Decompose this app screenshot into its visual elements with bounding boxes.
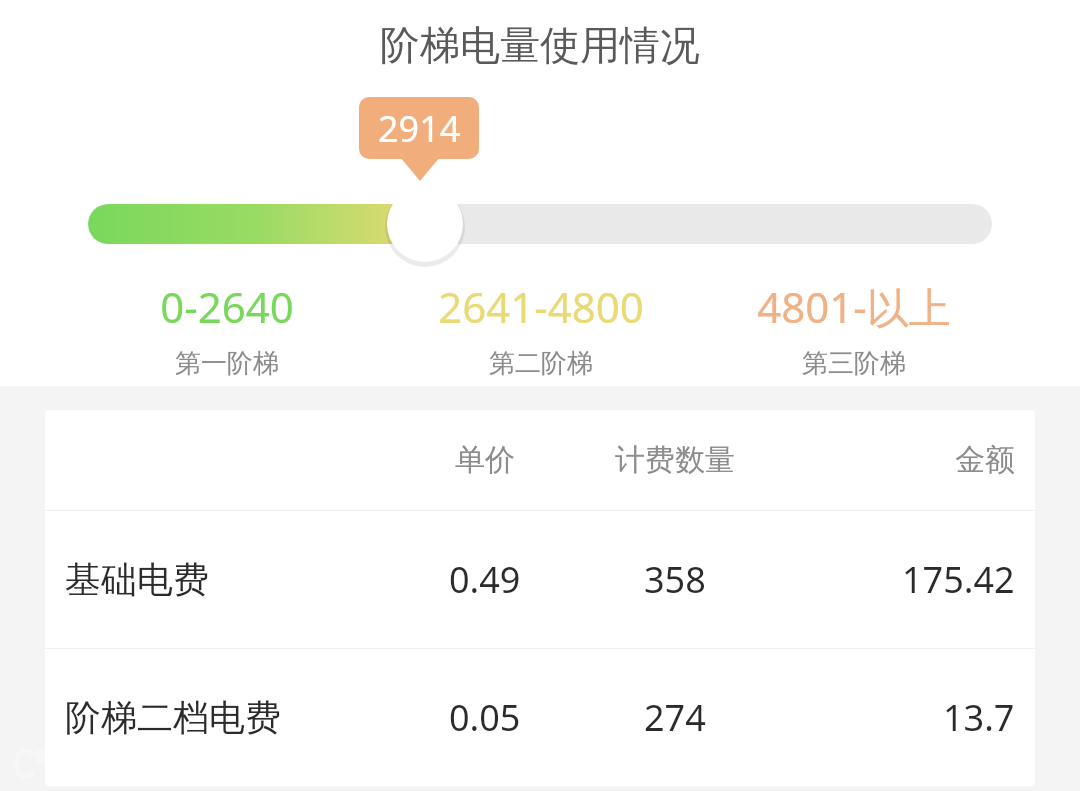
staticText: 175.42 [902, 555, 1015, 604]
button[interactable]: 0-2640 [70, 278, 384, 380]
staticText: 2914 [378, 104, 461, 153]
staticText: 0.49 [449, 555, 521, 604]
staticText: 阶梯二档电费 [65, 695, 281, 740]
button[interactable]: Slider handle [383, 182, 467, 266]
staticText: 358 [644, 555, 706, 604]
staticText: 第一阶梯 [175, 347, 279, 380]
button[interactable]: 阶梯二档电费 [45, 649, 1035, 786]
staticText: 计费数量 [615, 441, 735, 479]
button[interactable]: 基础电费 [45, 511, 1035, 648]
staticText: 274 [644, 693, 706, 742]
staticText: 2641-4800 [438, 278, 644, 335]
button[interactable]: 4801-以上 [697, 278, 1010, 380]
staticText: 第三阶梯 [802, 347, 906, 380]
staticText: 0.05 [449, 693, 521, 742]
button[interactable]: 单价 [45, 410, 1035, 510]
staticText: 4801-以上 [757, 278, 951, 335]
button[interactable] [88, 204, 992, 244]
button[interactable]: 2641-4800 [384, 278, 697, 380]
staticText: 第二阶梯 [489, 347, 593, 380]
staticText: 单价 [455, 441, 515, 479]
staticText: 金额 [955, 441, 1015, 479]
staticText: 13.7 [943, 693, 1015, 742]
staticText: 阶梯电量使用情况 [380, 20, 700, 70]
staticText: 0-2640 [160, 278, 294, 335]
staticText: 基础电费 [65, 557, 209, 602]
